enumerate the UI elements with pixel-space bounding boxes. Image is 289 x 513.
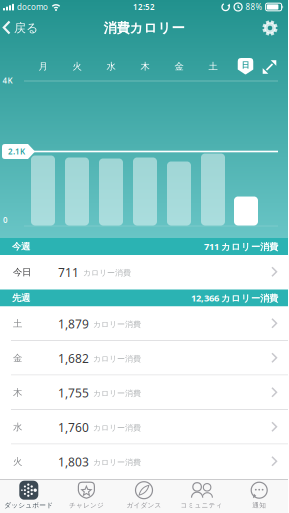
staticText: ダッシュボード bbox=[4, 501, 53, 509]
staticText: 火 bbox=[13, 456, 22, 467]
staticText: 金 bbox=[13, 352, 22, 364]
staticText: 1,879 bbox=[58, 316, 89, 332]
staticText: 水 bbox=[106, 61, 115, 72]
button[interactable]: 木 bbox=[0, 375, 288, 410]
staticText: カロリー消費 bbox=[93, 319, 141, 329]
staticText: 88% bbox=[246, 2, 263, 12]
button[interactable]: 通知 bbox=[230, 481, 288, 509]
button[interactable]: 今日 bbox=[0, 255, 288, 289]
staticText: コミュニティ bbox=[181, 501, 223, 509]
button[interactable]: コミュニティ bbox=[173, 481, 230, 509]
staticText: 1,760 bbox=[58, 419, 89, 435]
staticText: 先週 bbox=[12, 292, 30, 304]
staticText: docomo bbox=[17, 2, 48, 12]
button[interactable]: チャレンジ bbox=[58, 481, 115, 509]
staticText: カロリー消費 bbox=[93, 423, 141, 433]
staticText: 月 bbox=[38, 61, 47, 72]
staticText: ガイダンス bbox=[126, 501, 161, 509]
staticText: 12,366 カロリー消費 bbox=[191, 292, 278, 304]
staticText: 4K bbox=[2, 75, 12, 86]
button[interactable]: ガイダンス bbox=[115, 481, 173, 509]
button[interactable]: 土 bbox=[0, 306, 288, 341]
staticText: 火 bbox=[72, 61, 81, 72]
staticText: 土 bbox=[13, 318, 22, 329]
button[interactable]: ダッシュボード bbox=[0, 481, 58, 509]
button[interactable]: 設定 bbox=[262, 20, 288, 36]
button[interactable]: 金 bbox=[0, 341, 288, 375]
staticText: カロリー消費 bbox=[93, 354, 141, 364]
staticText: 木 bbox=[140, 61, 149, 72]
staticText: 日 bbox=[241, 60, 249, 70]
staticText: 木 bbox=[13, 387, 22, 398]
staticText: 12:52 bbox=[133, 2, 155, 12]
staticText: 今日 bbox=[13, 266, 31, 278]
staticText: 土 bbox=[208, 61, 217, 72]
staticText: 戻る bbox=[14, 21, 38, 35]
staticText: 金 bbox=[174, 61, 183, 72]
staticText: 1,803 bbox=[58, 454, 89, 470]
staticText: 2.1K bbox=[8, 146, 25, 157]
button[interactable]: 戻る bbox=[0, 21, 38, 35]
staticText: カロリー消費 bbox=[93, 457, 141, 467]
staticText: 通知 bbox=[252, 501, 266, 509]
staticText: 水 bbox=[13, 421, 22, 433]
staticText: 1,682 bbox=[58, 350, 89, 366]
staticText: 0 bbox=[3, 215, 8, 225]
button[interactable]: 日曜日 bbox=[238, 58, 253, 75]
staticText: 今週 bbox=[12, 241, 30, 252]
button[interactable]: 火 bbox=[0, 444, 288, 479]
staticText: 711 カロリー消費 bbox=[204, 240, 278, 253]
staticText: カロリー消費 bbox=[93, 388, 141, 398]
staticText: 1,755 bbox=[58, 385, 89, 401]
staticText: カロリー消費 bbox=[83, 268, 131, 278]
button[interactable]: 水 bbox=[0, 410, 288, 444]
staticText: 711 bbox=[58, 264, 79, 280]
button[interactable]: グラフを拡大 bbox=[262, 60, 276, 74]
staticText: 消費カロリー bbox=[103, 20, 184, 36]
staticText: チャレンジ bbox=[69, 501, 104, 509]
